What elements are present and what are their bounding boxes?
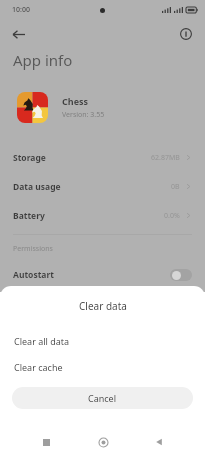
staticText: Autostart xyxy=(13,269,54,281)
button[interactable]: Cancel xyxy=(12,387,193,409)
staticText: Clear all data xyxy=(14,335,70,347)
staticText: Cancel xyxy=(88,392,117,404)
staticText: Permissions xyxy=(13,244,53,254)
button[interactable]: About xyxy=(173,21,199,47)
staticText: Version: 3.55 xyxy=(62,110,105,120)
staticText: 0B xyxy=(171,182,180,192)
button[interactable]: Home xyxy=(92,431,114,453)
button[interactable]: Storage xyxy=(0,143,205,172)
staticText: Clear data xyxy=(79,299,127,313)
button[interactable]: Back xyxy=(148,431,170,453)
button[interactable]: Back xyxy=(5,21,31,47)
staticText: Storage xyxy=(13,152,46,164)
staticText: Clear cache xyxy=(14,361,63,373)
button[interactable]: Battery xyxy=(0,201,205,230)
staticText: Chess xyxy=(62,95,89,107)
button[interactable]: Recents xyxy=(35,431,57,453)
staticText: 10:00 xyxy=(12,5,30,15)
button[interactable]: Clear all data xyxy=(0,330,205,352)
staticText: 0.0% xyxy=(164,211,180,221)
staticText: Battery xyxy=(13,210,45,222)
staticText: 62.87MB xyxy=(151,153,180,163)
staticText: App info xyxy=(13,50,73,70)
button[interactable]: Autostart xyxy=(0,262,205,288)
button[interactable]: Data usage xyxy=(0,172,205,201)
staticText: Data usage xyxy=(13,181,61,193)
button[interactable]: Clear cache xyxy=(0,356,205,378)
